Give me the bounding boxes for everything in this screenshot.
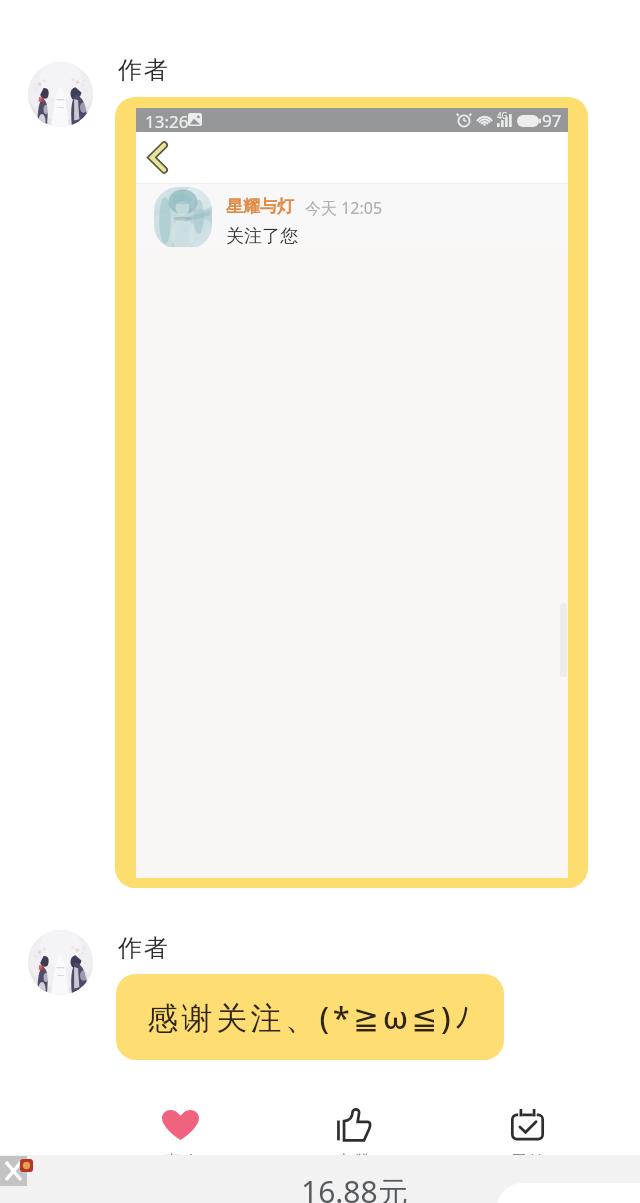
staticText: 13:26 [145, 110, 189, 133]
staticText: 今天 12:05 [305, 197, 383, 219]
staticText: 星耀与灯 [226, 196, 294, 217]
staticText: 作者 [117, 933, 169, 963]
staticText: 日签 [510, 1151, 546, 1174]
staticText: 4G [497, 110, 508, 121]
button[interactable]: Collect [495, 1092, 559, 1156]
staticText: 感谢关注、(*≧ω≦)ﾉ [147, 996, 474, 1038]
button[interactable]: Back [147, 142, 168, 173]
button[interactable]: Thumbs up [321, 1092, 385, 1156]
staticText: 关注了您 [226, 225, 298, 248]
staticText: 作者 [117, 55, 169, 85]
button[interactable]: Close ad [0, 1156, 27, 1186]
button[interactable]: 感谢关注、(*≧ω≦)ﾉ [116, 974, 504, 1060]
staticText: 喜欢 [163, 1151, 199, 1174]
staticText: 16.88元 [301, 1171, 408, 1203]
staticText: 点赞 [336, 1151, 372, 1174]
button[interactable]: 13:26 [115, 97, 588, 888]
staticText: 97 [542, 109, 562, 132]
button[interactable]: Like [148, 1092, 212, 1156]
